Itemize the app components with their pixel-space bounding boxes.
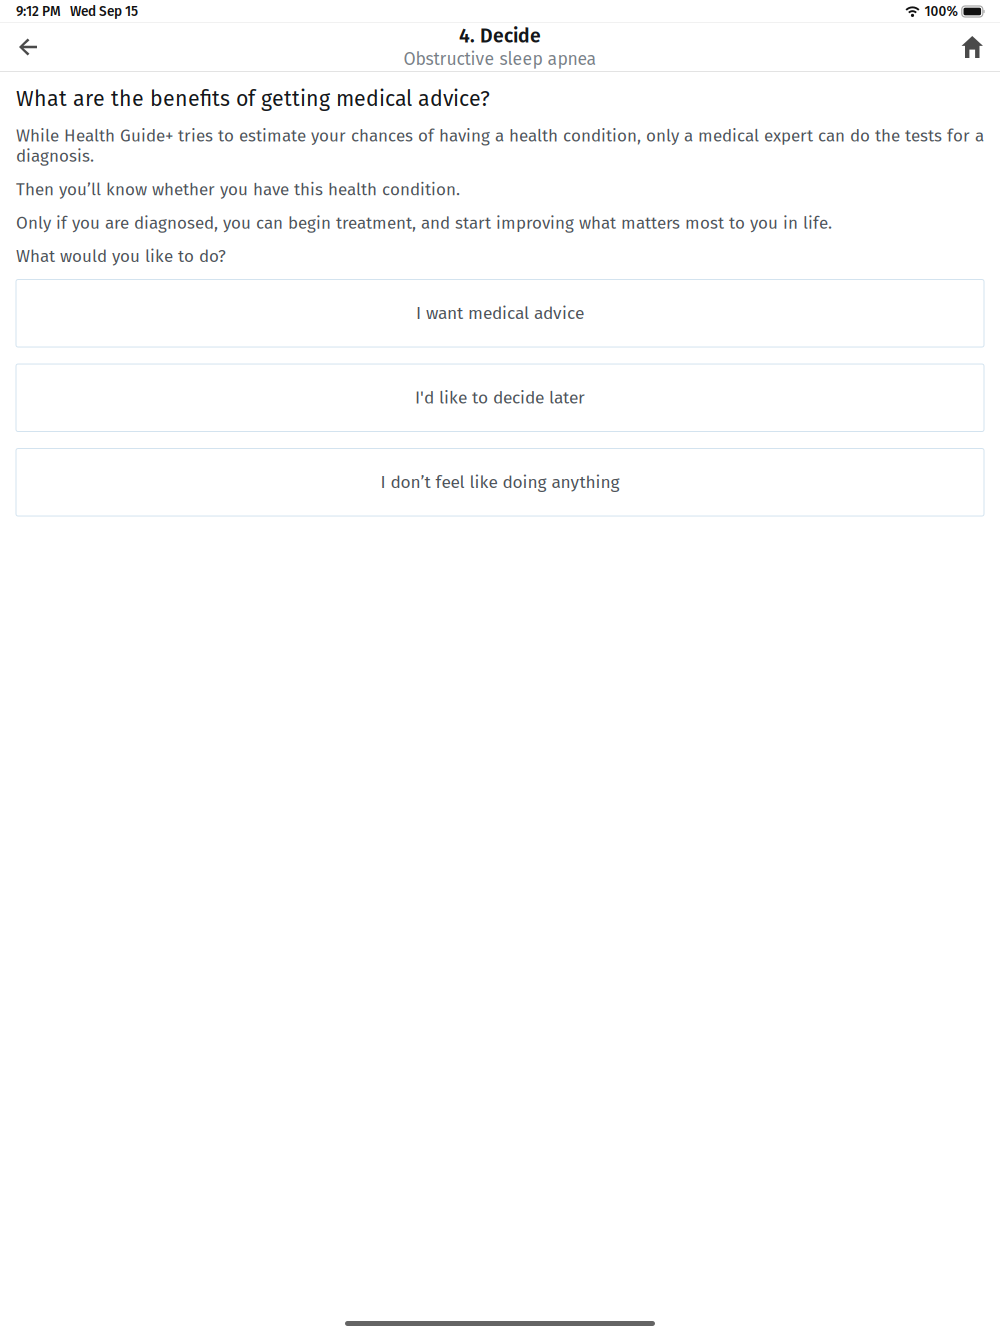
staticText: 9:12 PM Wed Sep 15: [16, 3, 138, 20]
staticText: 4. Decide: [459, 24, 541, 47]
staticText: I want medical advice: [416, 303, 584, 324]
staticText: 100%: [924, 3, 957, 20]
staticText: Only if you are diagnosed, you can begin…: [16, 213, 832, 233]
staticText: While Health Guide+ tries to estimate yo…: [16, 126, 984, 166]
button[interactable]: Home: [944, 23, 1000, 71]
staticText: Obstructive sleep apnea: [403, 48, 596, 70]
staticText: What are the benefits of getting medical…: [16, 86, 490, 112]
staticText: I'd like to decide later: [415, 387, 585, 408]
button[interactable]: I'd like to decide later: [16, 364, 984, 431]
button[interactable]: I want medical advice: [16, 279, 984, 347]
button[interactable]: I don’t feel like doing anything: [16, 448, 984, 516]
button[interactable]: Back: [0, 23, 54, 71]
staticText: Then you’ll know whether you have this h…: [16, 179, 460, 200]
staticText: What would you like to do?: [16, 246, 226, 266]
staticText: I don’t feel like doing anything: [380, 472, 619, 493]
